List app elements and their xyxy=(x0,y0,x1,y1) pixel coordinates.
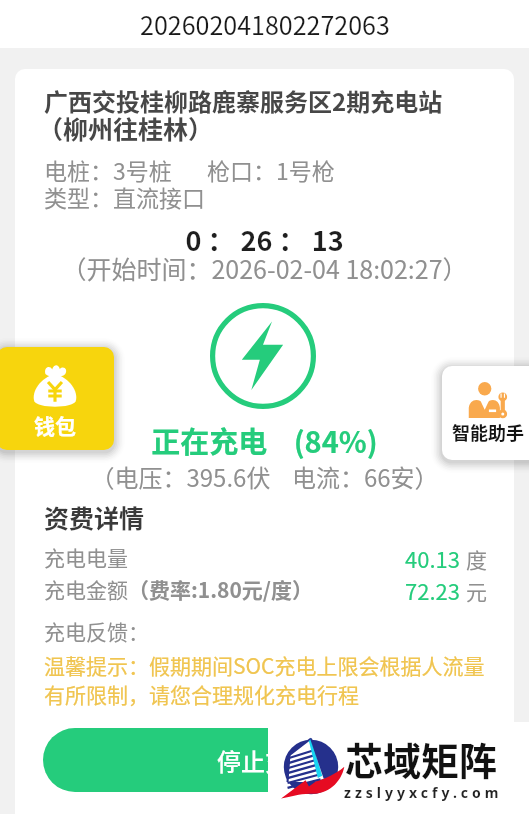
staticText: 充电金额（费率:1.80元/度） xyxy=(44,574,313,604)
staticText: 类型：直流接口 xyxy=(44,180,205,213)
staticText: 电桩：3号桩 xyxy=(44,153,172,186)
staticText: 钱包 xyxy=(34,410,76,440)
button[interactable]: 停止充电 xyxy=(43,728,486,792)
staticText: 72.23 xyxy=(405,574,460,606)
staticText: 40.13 xyxy=(405,542,460,574)
staticText: 广西交投桂柳路鹿寨服务区2期充电站 xyxy=(44,83,443,118)
staticText: 资费详情 xyxy=(44,499,145,535)
button[interactable]: 钱包 xyxy=(0,347,114,450)
staticText: 枪口：1号枪 xyxy=(207,153,335,186)
staticText: 停止充电 xyxy=(217,743,313,778)
staticText: 智能助手 xyxy=(452,419,524,445)
staticText: 正在充电 (84%) xyxy=(0,419,529,461)
staticText: zzslyyxcfy.com xyxy=(344,783,503,802)
button[interactable]: 智能助手 xyxy=(442,366,529,460)
staticText: 202602041802272063 xyxy=(140,6,390,42)
staticText: 元 xyxy=(466,576,487,606)
staticText: （电压：395.6伏 电流：66安） xyxy=(0,459,529,494)
staticText: （开始时间：2026-02-04 18:02:27） xyxy=(0,250,529,286)
staticText: 度 xyxy=(466,544,487,574)
staticText: （柳州往桂林） xyxy=(38,110,214,146)
staticText: 0 ： 26 ： 13 xyxy=(0,220,529,259)
staticText: 充电电量 xyxy=(44,542,128,572)
staticText: 芯域矩阵 xyxy=(345,731,498,786)
staticText: 温馨提示：假期期间SOC充电上限会根据人流量 有所限制，请您合理规化充电行程 xyxy=(44,650,485,709)
staticText: 充电反馈： xyxy=(44,616,149,646)
